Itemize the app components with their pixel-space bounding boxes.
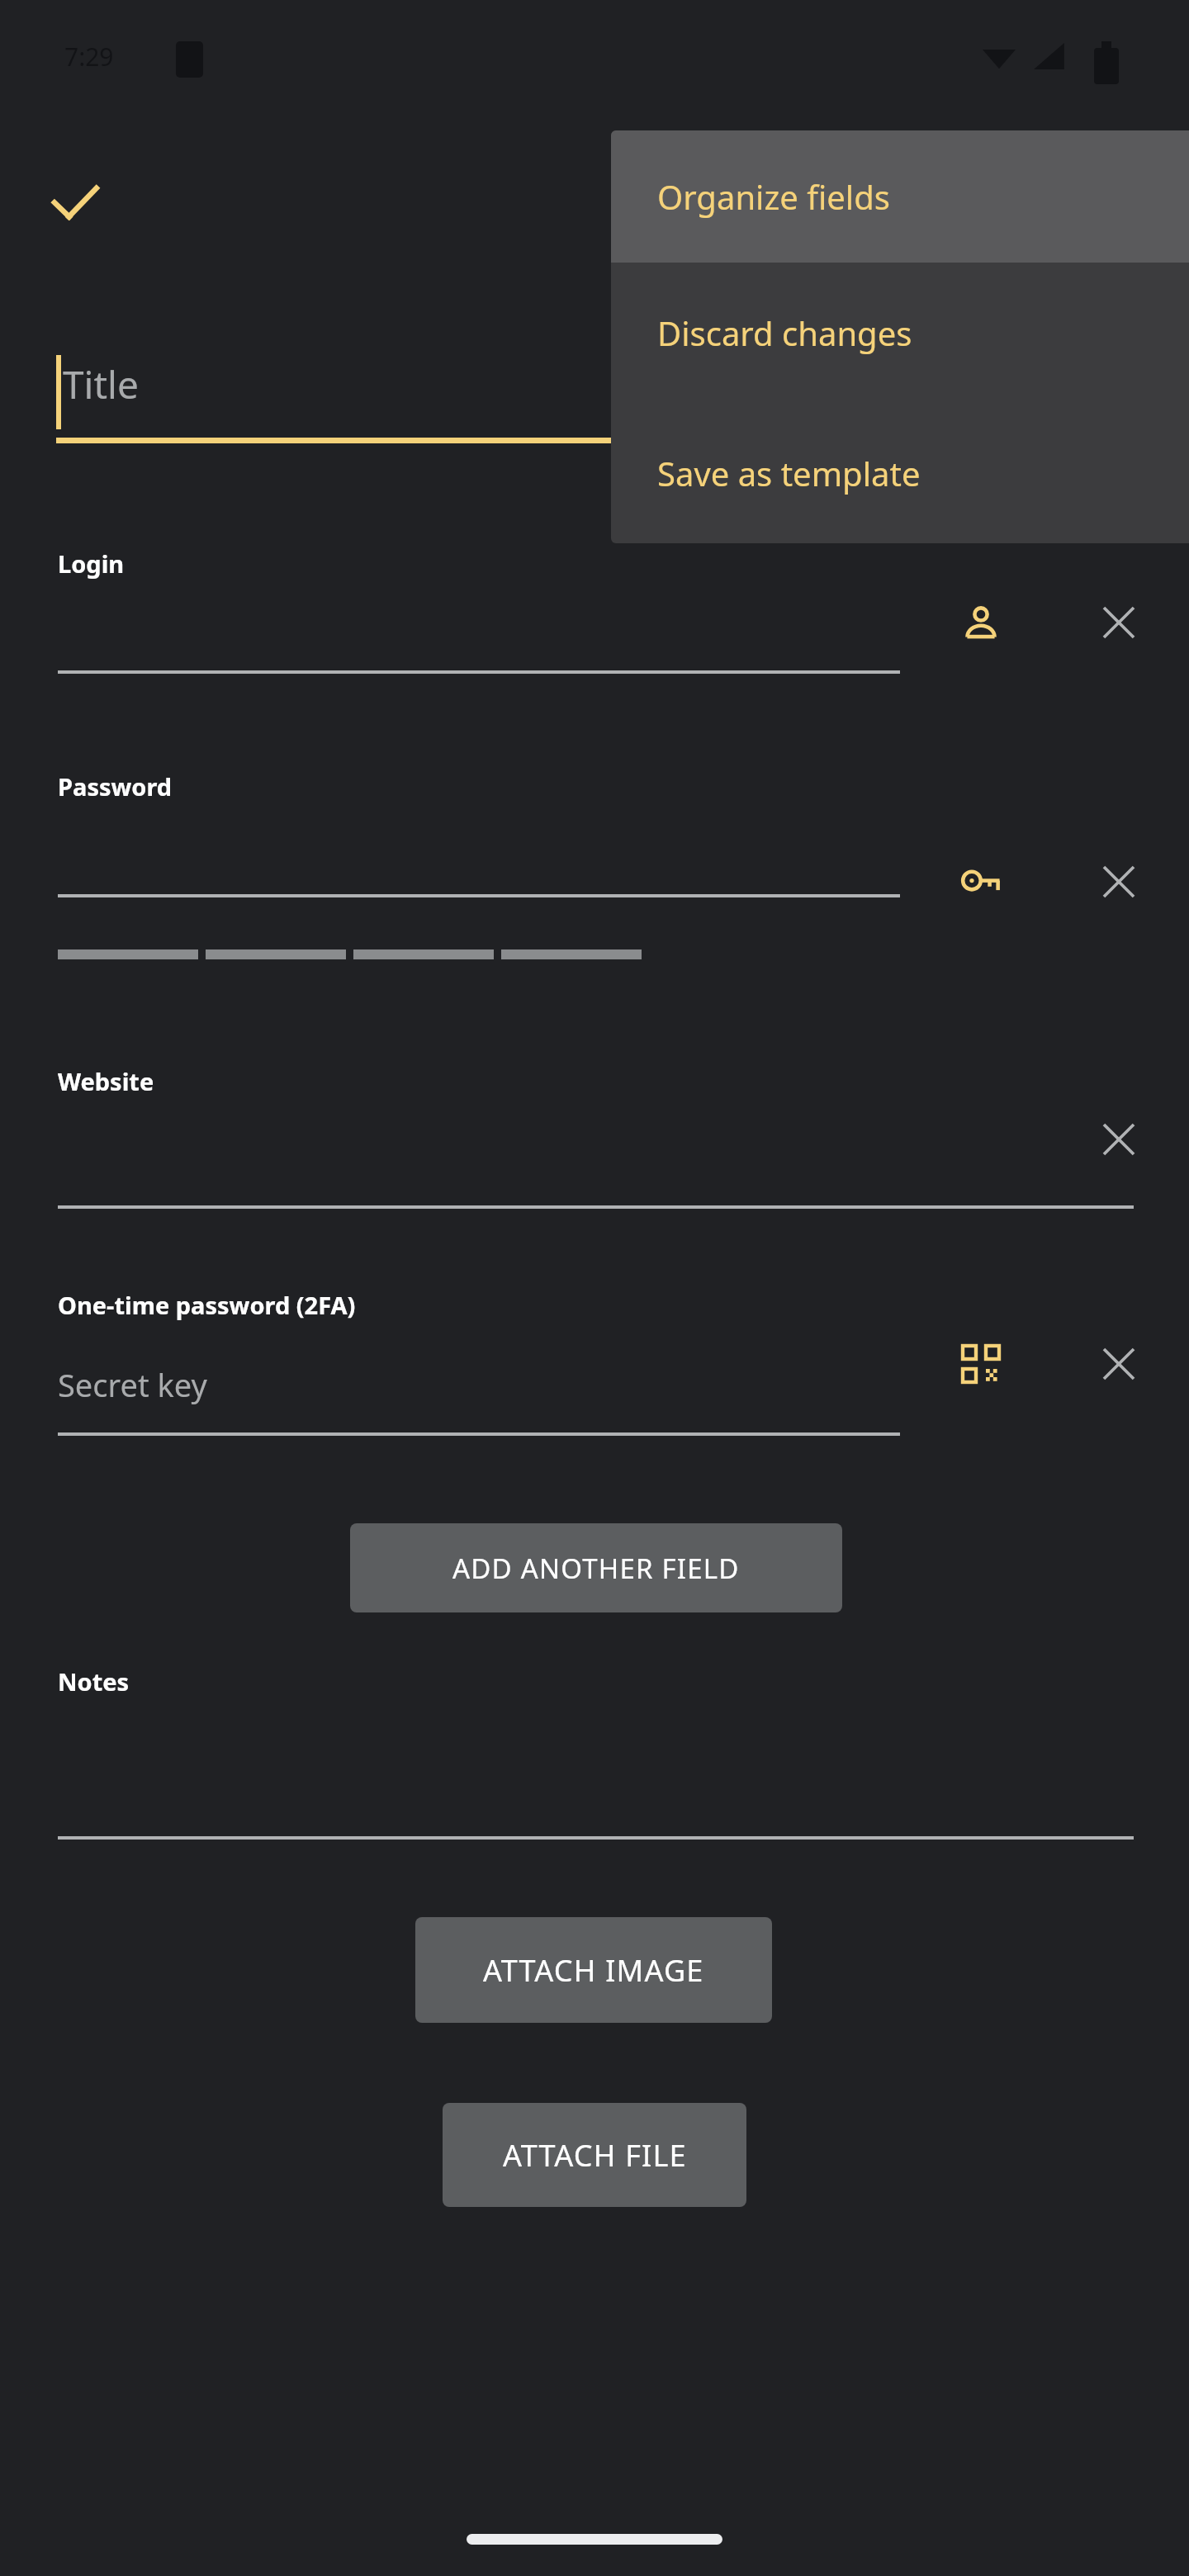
staticText: Organize fields xyxy=(657,174,890,219)
button[interactable]: ATTACH FILE xyxy=(443,2103,746,2207)
button[interactable]: Remove field xyxy=(1082,1328,1155,1400)
button[interactable]: Organize fields xyxy=(611,130,1189,263)
staticText: 7:29 xyxy=(64,40,114,73)
button[interactable]: Save as template xyxy=(611,403,1189,543)
staticText: Password xyxy=(58,770,173,803)
staticText: Title xyxy=(63,358,139,410)
button[interactable]: Generate password xyxy=(945,845,1017,918)
staticText: Notes xyxy=(58,1665,130,1698)
staticText: Login xyxy=(58,547,125,580)
button[interactable]: Remove field xyxy=(1082,586,1155,659)
staticText: ATTACH FILE xyxy=(503,2135,687,2176)
button[interactable]: Discard changes xyxy=(611,263,1189,403)
button[interactable]: Remove field xyxy=(1082,1103,1155,1176)
button[interactable]: Scan QR code xyxy=(945,1328,1017,1400)
staticText: Secret key xyxy=(58,1363,207,1406)
staticText: Website xyxy=(58,1065,154,1097)
staticText: ATTACH IMAGE xyxy=(483,1950,704,1991)
staticText: Discard changes xyxy=(657,310,912,355)
button[interactable]: ATTACH IMAGE xyxy=(415,1917,772,2023)
staticText: One-time password (2FA) xyxy=(58,1289,356,1321)
staticText: ADD ANOTHER FIELD xyxy=(452,1550,740,1587)
button[interactable]: ADD ANOTHER FIELD xyxy=(350,1523,842,1612)
button[interactable]: Pick user xyxy=(945,587,1017,660)
staticText: Save as template xyxy=(657,451,921,495)
button[interactable]: Save xyxy=(23,149,129,254)
button[interactable]: Remove field xyxy=(1082,845,1155,918)
